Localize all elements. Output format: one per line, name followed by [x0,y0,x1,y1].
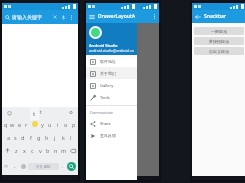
staticText: Communicate [90,110,113,115]
staticText: Android Studio [89,43,118,48]
staticText: 意见反馈 [100,133,116,138]
staticText: u [48,121,52,128]
button[interactable]: 意见反馈 [86,129,137,141]
staticText: 一般提示 [211,29,227,34]
staticText: j [54,134,56,141]
button[interactable]: m [60,144,68,157]
button[interactable]: More options [150,12,159,21]
button[interactable]: Android Studio [86,23,137,55]
button[interactable]: 请输入关键字 [2,10,78,24]
button[interactable]: ?1 [2,157,11,175]
staticText: c [31,147,34,154]
staticText: w [10,121,15,128]
button[interactable]: a [5,131,12,144]
button[interactable]: t [30,118,38,131]
staticText: q [4,121,8,128]
button[interactable]: Share [86,117,137,129]
staticText: g [37,134,41,141]
button[interactable]: 关于我们 [86,67,137,79]
button[interactable]: Clear [51,13,59,21]
button[interactable]: h [43,131,51,144]
staticText: l [70,134,72,141]
staticText: t [33,121,35,128]
staticText: m [61,147,67,154]
button[interactable]: i [54,118,62,131]
button[interactable]: x [20,144,28,157]
button[interactable]: 一般提示 [194,27,244,35]
button[interactable]: b [44,144,52,157]
button[interactable]: Emoji [2,107,18,118]
button[interactable]: o [62,118,70,131]
staticText: 带按钮提示 [209,39,229,44]
button[interactable]: 自定义提示 [194,47,244,55]
staticText: 关于我们 [100,71,116,76]
button[interactable]: s [12,131,19,144]
staticText: y [41,121,44,128]
staticText: i [57,121,59,128]
staticText: f [30,134,32,141]
button[interactable]: c [28,144,36,157]
button[interactable]: More options [67,13,75,21]
button[interactable]: Navigate up [192,11,204,23]
button[interactable]: , [11,157,19,175]
staticText: Tools [100,95,110,100]
staticText: t [33,110,36,118]
staticText: v [39,147,42,154]
button[interactable]: g [35,131,43,144]
staticText: ?1 [4,164,9,169]
staticText: d [21,134,25,141]
staticText: 请输入关键字 [12,14,42,20]
button[interactable]: . [59,157,67,175]
button[interactable]: Tools [86,91,137,103]
button[interactable]: k [59,131,67,144]
button[interactable]: t [18,107,64,118]
staticText: o [64,121,68,128]
staticText: e [18,121,22,128]
button[interactable]: 取件地址 [86,55,137,67]
button[interactable]: f [27,131,35,144]
staticText: b [46,147,50,154]
button[interactable]: Open navigation drawer [86,11,98,23]
staticText: t [40,109,42,116]
staticText: Gallery [100,83,114,88]
button[interactable]: e [16,118,23,131]
button[interactable]: Backspace [68,144,78,157]
button[interactable]: u [46,118,54,131]
staticText: Snackbar [204,13,227,20]
staticText: android.studio@android.com [89,48,137,53]
button[interactable]: Space [28,163,59,170]
button[interactable]: l [67,131,75,144]
button[interactable]: Search [67,162,76,171]
button[interactable]: z [12,144,20,157]
staticText: ⚙ [69,110,74,115]
staticText: 取件地址 [100,59,116,64]
staticText: DrawerLayoutActivity [98,13,137,20]
staticText: ☺ [7,110,13,116]
button[interactable]: v [36,144,44,157]
staticText: a [7,134,11,141]
staticText: 自定义提示 [209,49,229,54]
staticText: s [14,134,17,141]
staticText: r [25,121,28,128]
button[interactable]: Shift [2,144,12,157]
button[interactable]: Voice search [59,13,67,21]
staticText: p [72,121,76,128]
button[interactable]: r [23,118,30,131]
button[interactable]: w [9,118,16,131]
button[interactable]: Gallery [86,79,137,91]
staticText: 中文 ABC [36,164,51,169]
staticText: n [54,147,58,154]
button[interactable]: Language [19,157,28,175]
staticText: z [15,147,18,154]
staticText: k [62,134,65,141]
button[interactable]: p [70,118,78,131]
button[interactable]: n [52,144,60,157]
button[interactable]: d [19,131,27,144]
button[interactable]: 带按钮提示 [194,37,244,45]
button[interactable]: y [38,118,46,131]
button[interactable]: q [2,118,9,131]
button[interactable]: j [51,131,59,144]
button[interactable]: Settings [64,107,78,118]
staticText: , [14,163,16,170]
